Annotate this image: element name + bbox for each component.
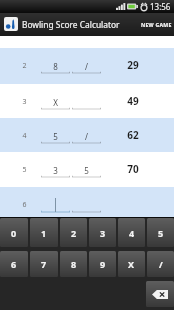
button[interactable]: X [118,251,145,277]
button[interactable]: 2 [60,218,87,247]
staticText: 3 [100,227,106,239]
button[interactable]: 6 [0,251,28,277]
button[interactable]: 0 [0,218,28,247]
button[interactable]: 7 [30,251,58,277]
staticText: 62 [127,128,139,142]
staticText: 3 [22,97,27,107]
button[interactable]: 1 [30,218,58,247]
button[interactable]: App icon [4,17,18,31]
staticText: 70 [127,162,139,176]
staticText: NEW GAME [141,21,172,28]
button[interactable]: 5 [0,152,174,187]
staticText: 1 [41,227,47,239]
staticText: 3 [53,165,58,176]
button[interactable]: 2 [0,48,174,84]
button[interactable]: 3 [0,84,174,118]
staticText: 4 [22,131,27,141]
staticText: 2 [22,61,27,71]
staticText: / [85,61,88,72]
staticText: 7 [41,258,47,270]
staticText: 0 [11,227,17,239]
staticText: 6 [11,258,17,270]
staticText: 6 [22,200,27,210]
staticText: X [53,97,58,108]
staticText: / [159,258,163,270]
button[interactable]: 9 [89,251,116,277]
staticText: 2 [71,227,77,239]
button[interactable]: 3 [89,218,116,247]
staticText: 13:56 [150,1,171,12]
button[interactable]: NEW GAME [141,13,172,36]
staticText: 4 [129,227,135,239]
staticText: 8 [71,258,77,270]
staticText: 9 [100,258,106,270]
staticText: 5 [158,227,164,239]
staticText: X [128,258,135,270]
staticText: 49 [127,94,139,108]
staticText: 8 [53,61,58,72]
staticText: 29 [127,58,139,72]
button[interactable]: / [147,251,174,277]
button[interactable]: 4 [0,118,174,152]
staticText: 5 [53,131,58,142]
button[interactable]: Backspace [146,281,174,307]
button[interactable]: 8 [60,251,87,277]
staticText: / [85,131,88,142]
button[interactable]: 6 [0,187,174,217]
button[interactable]: 4 [118,218,145,247]
staticText: Bowling Score Calculator [22,19,120,30]
button[interactable]: 5 [147,218,174,247]
staticText: 5 [84,165,89,176]
staticText: 5 [22,165,27,175]
